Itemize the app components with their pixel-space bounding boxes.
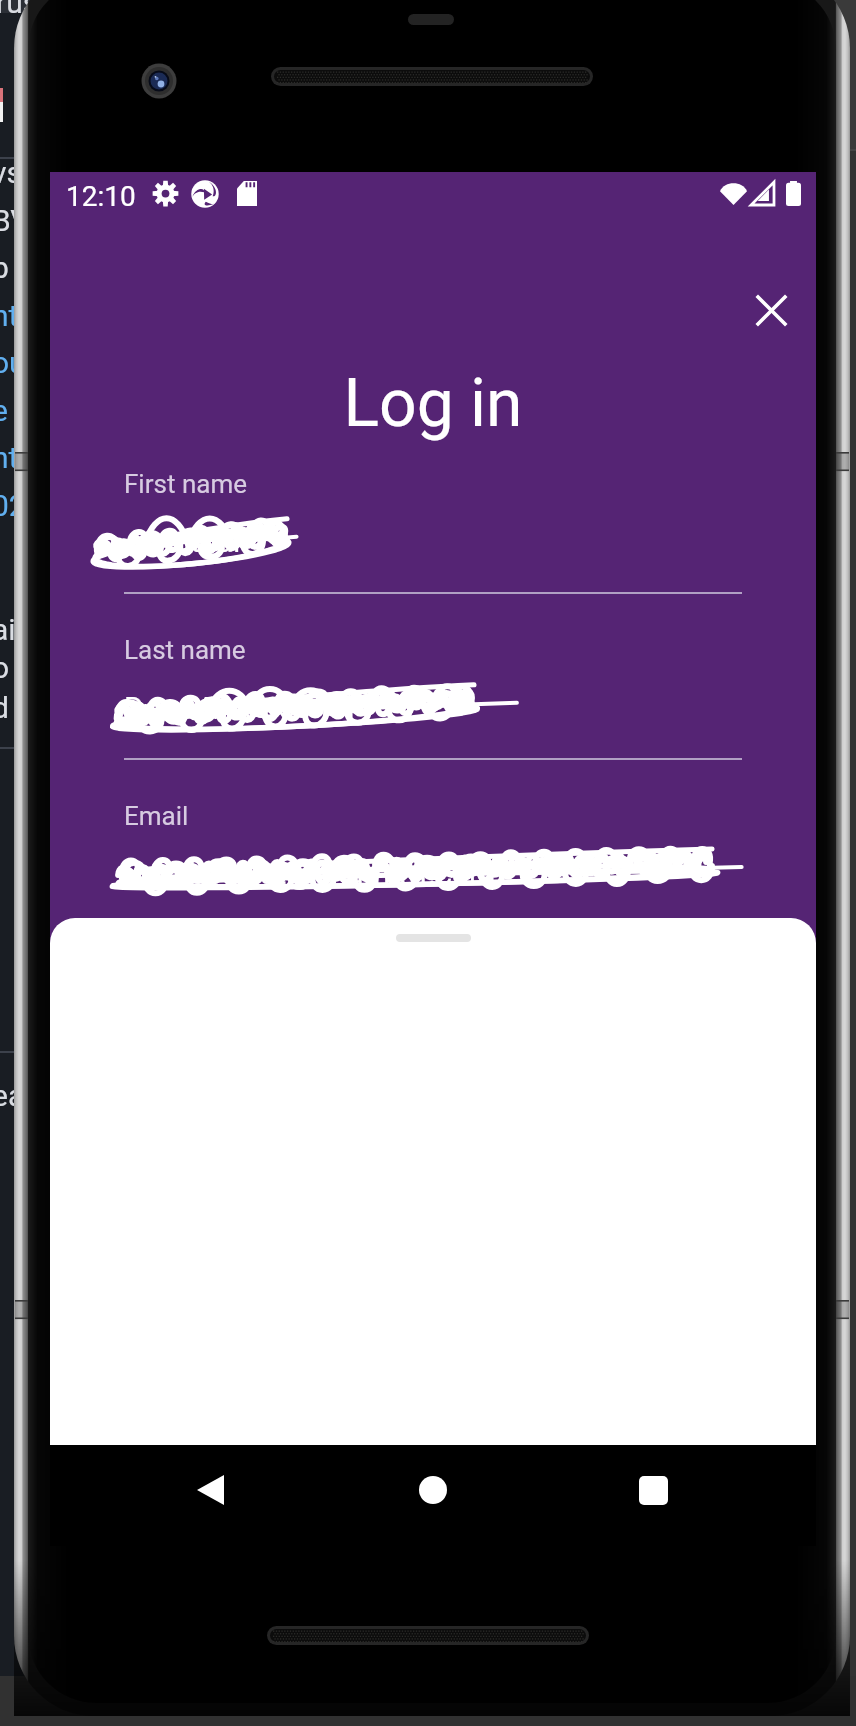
staticText: vs [0, 155, 23, 190]
button[interactable]: Home [405, 1462, 461, 1518]
staticText: e [0, 393, 8, 428]
staticText: ea [0, 1078, 25, 1113]
staticText: 12:10 [66, 180, 136, 213]
button[interactable]: Recents [625, 1462, 681, 1518]
staticText: b [0, 250, 9, 285]
button[interactable]: Back [182, 1462, 238, 1518]
button[interactable]: Close [743, 282, 800, 339]
staticText: Last name [124, 635, 246, 665]
staticText: unal.beeciat@ mumeyr.com [124, 856, 496, 891]
staticText: nt [0, 440, 19, 475]
staticText: Doe-Mastersonth [124, 690, 355, 725]
staticText: ain [0, 612, 33, 647]
staticText: nt [0, 298, 19, 333]
staticText: First name [124, 469, 247, 499]
staticText: ou [0, 345, 26, 380]
staticText: BV [0, 203, 30, 238]
staticText: rus [0, 0, 39, 20]
staticText: k [832, 60, 848, 95]
staticText: Log in [50, 365, 816, 442]
staticText: Jonathan [124, 524, 250, 559]
staticText: 02 [0, 488, 26, 523]
staticText: Email [124, 801, 189, 831]
staticText: d [0, 690, 9, 725]
staticText: o [0, 650, 10, 685]
